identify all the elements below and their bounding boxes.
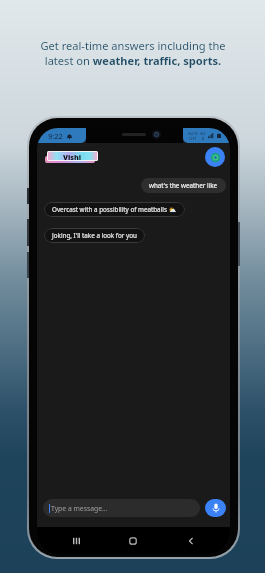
button[interactable]: Type a message... — [43, 499, 200, 517]
button[interactable]: Voice input — [205, 499, 226, 517]
staticText: Vishi — [63, 152, 82, 160]
staticText: ⇅ — [201, 136, 205, 141]
button[interactable]: Vishi — [46, 151, 98, 163]
staticText: Overcast with a possibility of meatballs… — [52, 205, 177, 214]
staticText: LTE1 — [189, 136, 197, 141]
staticText: 4G — [200, 131, 206, 136]
staticText: Type a message... — [51, 504, 108, 513]
staticText: Joking, I'll take a look for you — [52, 231, 137, 240]
button[interactable]: what's the weather like — [141, 178, 226, 193]
button[interactable]: Overcast with a possibility of meatballs… — [44, 202, 185, 217]
button[interactable]: Joking, I'll take a look for you — [44, 228, 145, 243]
button[interactable]: Assistant — [205, 147, 225, 167]
staticText: 9:22 — [48, 131, 63, 141]
button[interactable]: Recents — [47, 527, 104, 554]
button[interactable]: Back — [162, 527, 220, 554]
staticText: VoLTE — [188, 131, 198, 136]
staticText: what's the weather like — [149, 181, 218, 190]
button[interactable]: Home — [104, 527, 162, 554]
staticText: Get real-time answers including the late… — [33, 38, 233, 68]
